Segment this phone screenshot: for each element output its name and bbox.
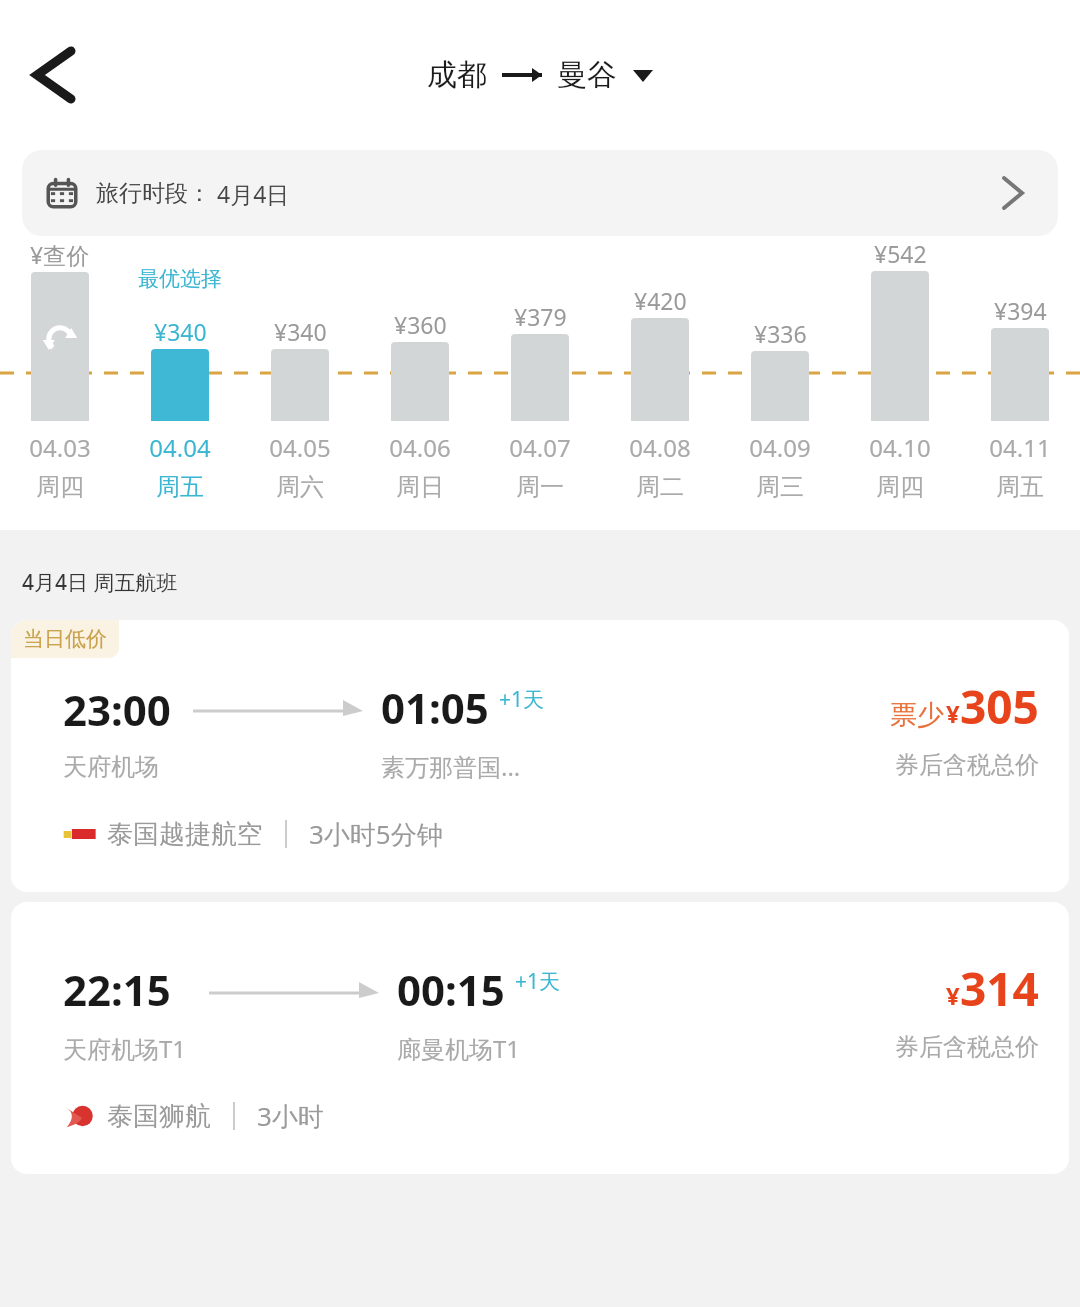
staticText: 4月4日 (217, 178, 290, 209)
staticText: ¥340 (274, 316, 327, 347)
button[interactable]: 成都 (427, 56, 653, 94)
staticText: 04.09 (749, 431, 811, 464)
staticText: 04.06 (389, 431, 451, 464)
button[interactable]: ¥336 (720, 236, 840, 521)
button[interactable]: Back (20, 43, 84, 107)
staticText: 天府机场T1 (63, 1032, 187, 1065)
staticText: 旅行时段： (96, 179, 211, 208)
staticText: 周一 (516, 472, 564, 502)
staticText: 泰国狮航 (107, 1100, 211, 1133)
staticText: 3小时 (257, 1098, 324, 1134)
staticText: 最优选择 (138, 266, 222, 292)
staticText: ¥ (946, 697, 960, 730)
staticText: 23:00 (63, 681, 171, 738)
staticText: 22:15 (63, 961, 171, 1018)
staticText: ¥查价 (30, 239, 90, 270)
staticText: 周四 (876, 472, 924, 502)
staticText: +1天 (515, 967, 561, 996)
staticText: 04.03 (29, 431, 91, 464)
button[interactable]: ¥542 (840, 236, 960, 521)
staticText: 周六 (276, 472, 324, 502)
button[interactable]: ¥394 (960, 236, 1080, 521)
staticText: 素万那普国... (381, 750, 521, 783)
staticText: ¥360 (394, 309, 447, 340)
staticText: 泰国越捷航空 (107, 818, 263, 851)
staticText: ¥336 (754, 318, 807, 349)
staticText: 04.08 (629, 431, 691, 464)
button[interactable]: 旅行时段： (22, 150, 1058, 236)
staticText: 天府机场 (63, 752, 159, 782)
staticText: 305 (960, 675, 1039, 738)
button[interactable]: ¥查价 (0, 236, 120, 521)
staticText: ¥394 (994, 295, 1047, 326)
staticText: 04.11 (989, 431, 1051, 464)
staticText: 04.07 (509, 431, 571, 464)
staticText: 3小时5分钟 (309, 816, 443, 852)
staticText: 券后含税总价 (895, 750, 1039, 780)
staticText: 周四 (36, 472, 84, 502)
staticText: 4月4日 周五航班 (22, 568, 178, 597)
staticText: 周五 (996, 472, 1044, 502)
staticText: ¥340 (154, 316, 207, 347)
staticText: 周二 (636, 472, 684, 502)
staticText: 成都 (427, 56, 487, 94)
staticText: 04.05 (269, 431, 331, 464)
staticText: 曼谷 (557, 56, 617, 94)
staticText: 周日 (396, 472, 444, 502)
button[interactable]: ¥360 (360, 236, 480, 521)
staticText: 券后含税总价 (895, 1032, 1039, 1062)
staticText: 314 (960, 957, 1039, 1020)
staticText: ¥420 (634, 285, 687, 316)
staticText: 当日低价 (23, 626, 107, 652)
staticText: 廊曼机场T1 (397, 1032, 521, 1065)
staticText: ¥542 (874, 238, 927, 269)
staticText: 周三 (756, 472, 804, 502)
staticText: 01:05 (381, 679, 489, 736)
staticText: 周五 (156, 472, 204, 502)
button[interactable]: ¥379 (480, 236, 600, 521)
staticText: +1天 (499, 685, 545, 714)
staticText: 04.04 (149, 431, 211, 464)
staticText: ¥ (946, 979, 960, 1012)
staticText: ¥379 (514, 301, 567, 332)
button[interactable]: ¥420 (600, 236, 720, 521)
button[interactable]: 当日低价 (11, 620, 1069, 892)
button[interactable]: ¥340 (240, 236, 360, 521)
staticText: 00:15 (397, 961, 505, 1018)
button[interactable]: 22:15 (11, 902, 1069, 1174)
button[interactable]: 最优选择 (120, 236, 240, 521)
staticText: 票少 (890, 698, 944, 732)
staticText: 04.10 (869, 431, 931, 464)
